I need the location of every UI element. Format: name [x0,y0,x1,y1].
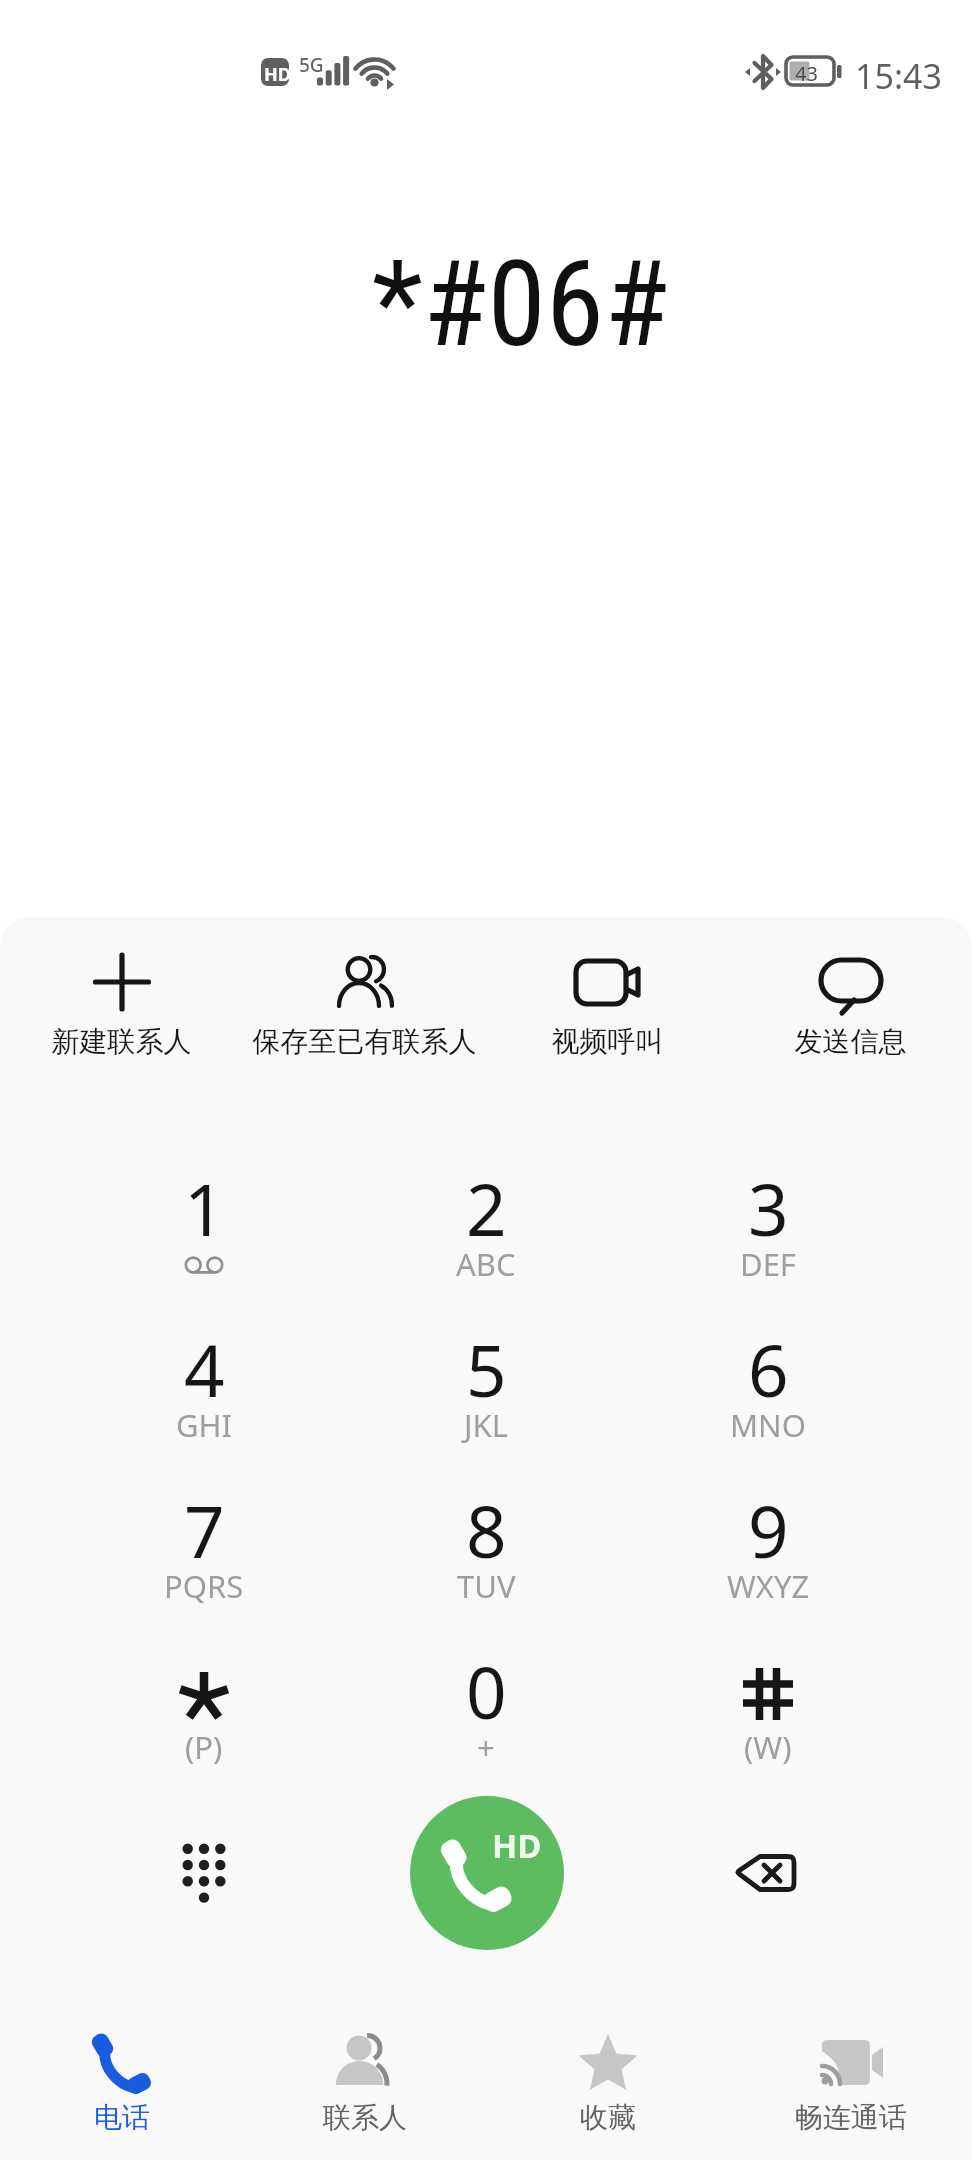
staticText: + [477,1726,495,1768]
staticText: 2 [466,1160,507,1257]
button[interactable]: 新建联系人 [0,917,243,1097]
button[interactable]: 1 [63,1161,345,1322]
staticText: 1 [184,1160,225,1257]
staticText: TUV [457,1565,516,1607]
staticText: 4 [184,1321,225,1418]
button[interactable]: 收藏 [486,2000,729,2160]
staticText: 发送信息 [729,1024,972,1059]
button[interactable]: 电话 [0,2000,243,2160]
staticText: JKL [464,1404,508,1446]
button[interactable]: 视频呼叫 [486,917,729,1097]
staticText: PQRS [164,1565,244,1607]
button[interactable]: 0 [345,1644,627,1805]
staticText: 0 [466,1643,507,1740]
staticText: HD [264,62,291,87]
staticText: 畅连通话 [795,2100,907,2135]
button[interactable]: 5 [345,1322,627,1483]
button[interactable]: 保存至已有联系人 [243,917,486,1097]
button[interactable]: 7 [63,1483,345,1644]
staticText: 5G [299,52,324,78]
staticText: 新建联系人 [0,1024,243,1059]
staticText: 视频呼叫 [486,1024,729,1059]
staticText: ABC [456,1243,516,1285]
staticText: MNO [730,1404,806,1446]
button[interactable]: 6 [627,1322,909,1483]
button[interactable]: (W) [627,1644,909,1805]
staticText: 43 [795,60,818,87]
staticText: 联系人 [323,2100,407,2135]
staticText: *#06# [372,236,669,374]
button[interactable]: 畅连通话 [729,2000,972,2160]
button[interactable]: 8 [345,1483,627,1644]
staticText: 6 [748,1321,789,1418]
button[interactable]: Call [410,1796,564,1950]
button[interactable]: 联系人 [243,2000,486,2160]
staticText: 保存至已有联系人 [243,1024,486,1059]
staticText: DEF [740,1243,796,1285]
button[interactable]: 9 [627,1483,909,1644]
staticText: 8 [466,1482,507,1579]
staticText: GHI [176,1404,233,1446]
staticText: 收藏 [580,2100,636,2135]
staticText: (W) [744,1726,792,1768]
staticText: 3 [748,1160,789,1257]
button[interactable]: 4 [63,1322,345,1483]
button[interactable]: Hide keypad [149,1818,259,1928]
staticText: HD [492,1823,542,1868]
button[interactable]: 3 [627,1161,909,1322]
staticText: WXYZ [727,1565,810,1607]
button[interactable]: (P) [63,1644,345,1805]
button[interactable]: 2 [345,1161,627,1322]
button[interactable]: Backspace [711,1818,821,1928]
staticText: 15:43 [855,53,942,99]
button[interactable]: 发送信息 [729,917,972,1097]
staticText: 5 [466,1321,507,1418]
staticText: 7 [184,1482,225,1579]
staticText: (P) [185,1726,223,1768]
staticText: 9 [748,1482,789,1579]
staticText: 电话 [94,2100,150,2135]
